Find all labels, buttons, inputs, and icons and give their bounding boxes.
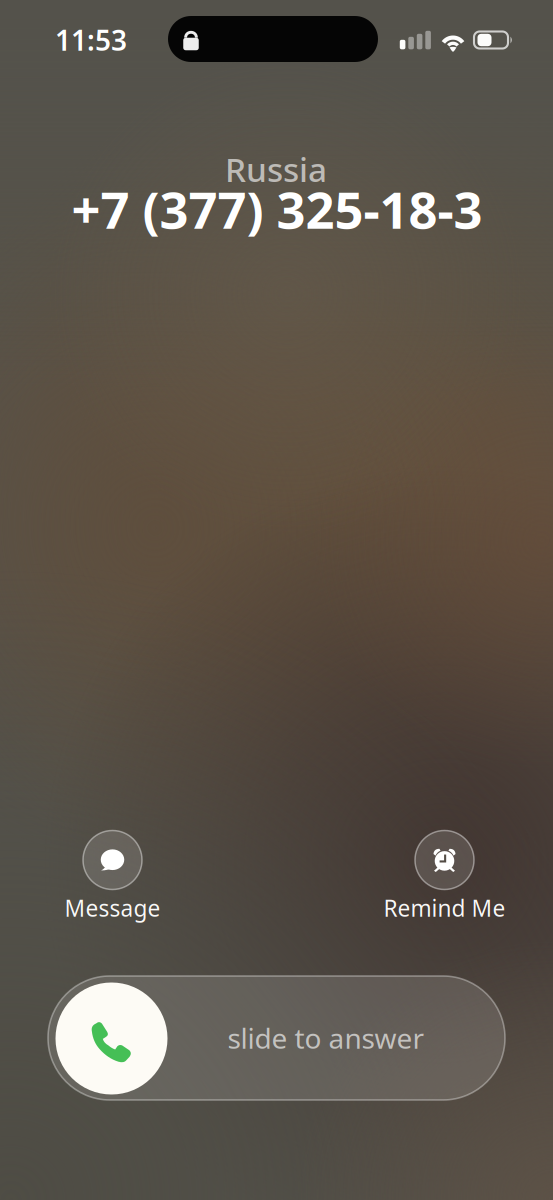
staticText: Message xyxy=(64,893,160,923)
staticText: 11:53 xyxy=(55,21,127,59)
staticText: +7 (377) 325-18-3 xyxy=(71,175,482,243)
staticText: slide to answer xyxy=(227,1019,424,1057)
staticText: Russia xyxy=(225,147,327,191)
staticText: Remind Me xyxy=(383,893,505,923)
button[interactable]: Slide to answer xyxy=(48,976,505,1100)
button[interactable]: Message xyxy=(22,825,202,925)
button[interactable]: Remind Me xyxy=(354,825,534,925)
